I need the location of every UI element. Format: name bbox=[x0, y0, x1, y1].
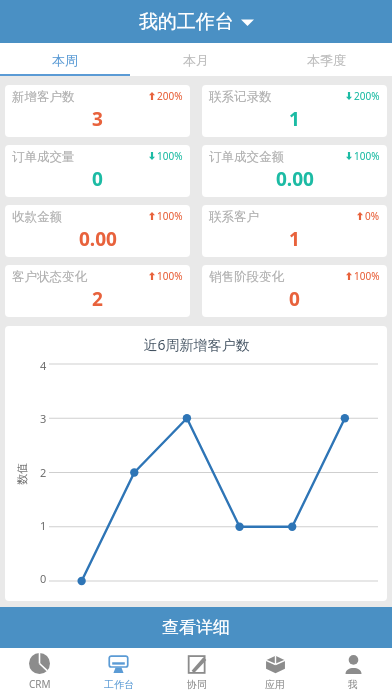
staticText: 数值 bbox=[15, 463, 29, 485]
staticText: 本月 bbox=[183, 52, 209, 68]
button[interactable]: 本周 bbox=[0, 43, 130, 76]
staticText: 200% bbox=[354, 89, 380, 103]
staticText: 应用 bbox=[265, 678, 285, 691]
staticText: 0.00 bbox=[79, 226, 117, 252]
button[interactable]: 本月 bbox=[130, 43, 261, 76]
button[interactable]: CRM bbox=[0, 648, 79, 696]
button[interactable]: 本季度 bbox=[261, 43, 392, 76]
button[interactable]: 订单成交金额 bbox=[202, 145, 387, 197]
button[interactable]: 新增客户数 bbox=[5, 85, 190, 137]
staticText: 新增客户数 bbox=[12, 89, 75, 105]
staticText: 100% bbox=[157, 269, 183, 283]
button[interactable]: 联系客户 bbox=[202, 205, 387, 257]
staticText: 100% bbox=[157, 149, 183, 163]
staticText: 我的工作台 bbox=[139, 10, 234, 34]
button[interactable]: 应用 bbox=[236, 648, 314, 696]
staticText: 0 bbox=[289, 286, 300, 312]
staticText: 4 bbox=[40, 358, 47, 373]
staticText: 查看详细 bbox=[162, 617, 230, 638]
button[interactable]: 我 bbox=[314, 648, 392, 696]
button[interactable]: 近6周新增客户数 bbox=[5, 326, 387, 601]
staticText: 3 bbox=[92, 106, 103, 132]
staticText: 0 bbox=[40, 571, 47, 586]
staticText: 200% bbox=[157, 89, 183, 103]
staticText: 联系记录数 bbox=[209, 89, 272, 105]
staticText: 客户状态变化 bbox=[12, 269, 87, 285]
staticText: 2 bbox=[40, 465, 47, 480]
staticText: 1 bbox=[289, 226, 300, 252]
staticText: 3 bbox=[40, 411, 47, 426]
staticText: 本季度 bbox=[307, 52, 346, 68]
staticText: CRM bbox=[29, 677, 51, 691]
staticText: 本周 bbox=[52, 52, 78, 68]
button[interactable]: 工作台 bbox=[79, 648, 158, 696]
staticText: 0 bbox=[92, 166, 103, 192]
button[interactable]: 协同 bbox=[158, 648, 236, 696]
button[interactable]: 我的工作台 bbox=[139, 10, 254, 34]
staticText: 1 bbox=[289, 106, 300, 132]
staticText: 100% bbox=[354, 149, 380, 163]
staticText: 协同 bbox=[187, 678, 207, 691]
button[interactable]: 查看详细 bbox=[0, 607, 392, 648]
staticText: 1 bbox=[40, 518, 47, 533]
staticText: 订单成交金额 bbox=[209, 149, 284, 165]
staticText: 0.00 bbox=[276, 166, 314, 192]
staticText: 联系客户 bbox=[209, 209, 259, 225]
staticText: 2 bbox=[92, 286, 103, 312]
staticText: 0% bbox=[365, 209, 380, 223]
staticText: 100% bbox=[354, 269, 380, 283]
staticText: 100% bbox=[157, 209, 183, 223]
staticText: 销售阶段变化 bbox=[209, 269, 284, 285]
staticText: 收款金额 bbox=[12, 209, 62, 225]
button[interactable]: 订单成交量 bbox=[5, 145, 190, 197]
button[interactable]: 收款金额 bbox=[5, 205, 190, 257]
staticText: 我 bbox=[348, 678, 358, 691]
staticText: 工作台 bbox=[104, 678, 134, 691]
button[interactable]: 销售阶段变化 bbox=[202, 265, 387, 317]
button[interactable]: 客户状态变化 bbox=[5, 265, 190, 317]
staticText: 订单成交量 bbox=[12, 149, 75, 165]
button[interactable]: 联系记录数 bbox=[202, 85, 387, 137]
staticText: 近6周新增客户数 bbox=[143, 335, 250, 354]
